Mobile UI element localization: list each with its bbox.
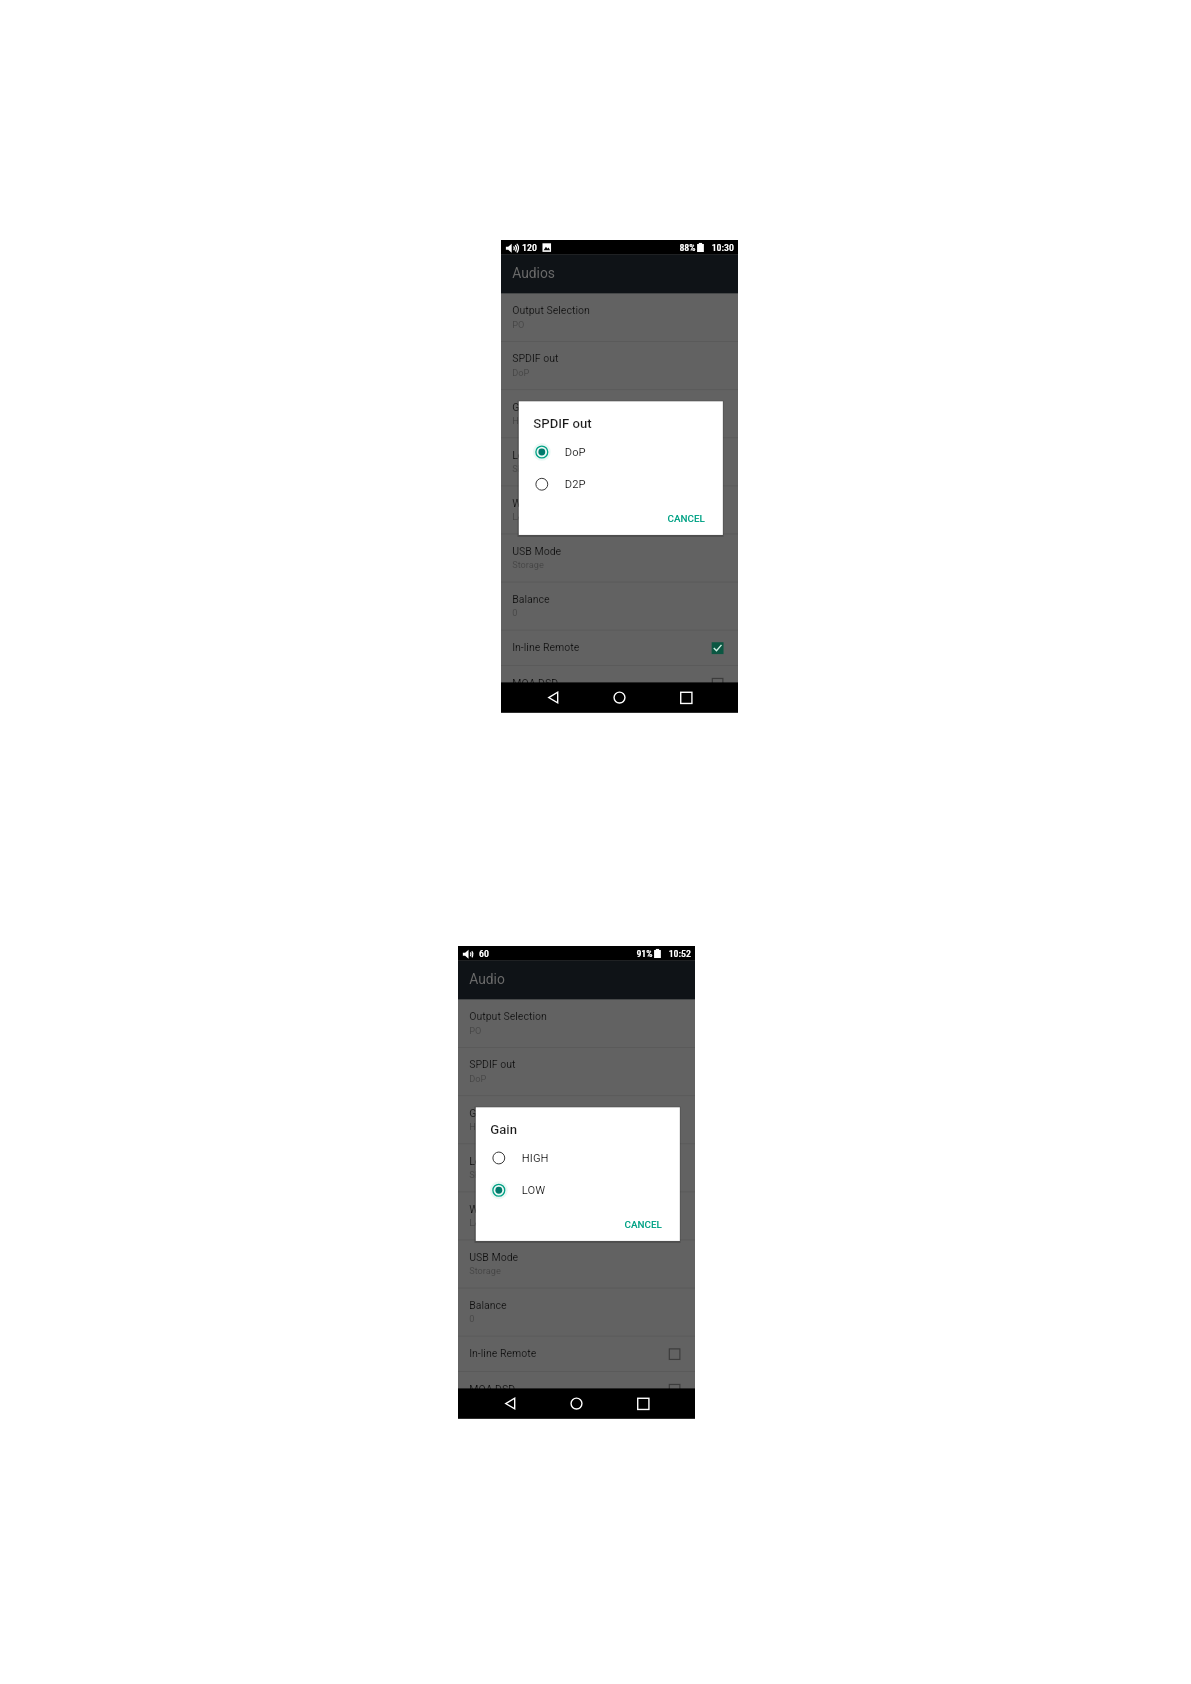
staticText: SPDIF out [533,415,592,430]
staticText: CANCEL [625,1219,662,1231]
button[interactable]: MQA DSD [501,665,738,701]
button[interactable]: Low Pass Filter [458,1143,695,1192]
staticText: MQA DSD [512,677,558,690]
staticText: DoP [565,445,586,459]
button[interactable]: Output Selection [458,999,695,1047]
button[interactable]: Wifi Mode [458,1192,695,1240]
staticText: Low Pass Filter [469,1155,541,1167]
staticText: In-line Remote [469,1348,536,1360]
staticText: PO [469,1025,482,1035]
staticText: Audios [512,266,555,282]
staticText: SPDIF out [469,1059,516,1071]
staticText: Wifi Mode [469,1203,517,1215]
staticText: Gain [512,401,534,413]
staticText: CANCEL [668,513,705,525]
staticText: SPDIF out [512,353,559,365]
button[interactable]: SPDIF out [501,341,738,389]
staticText: 10:52 [669,947,691,959]
staticText: Audio [469,972,505,988]
staticText: Output Selection [512,304,590,317]
staticText: LOW [522,1184,546,1197]
button[interactable]: DoP [519,436,723,468]
staticText: Low Pass Filter [512,449,584,461]
button[interactable]: Back [534,682,573,713]
staticText: 88% [679,241,696,253]
button[interactable]: HIGH [476,1142,680,1174]
staticText: USB Mode [469,1251,519,1263]
button[interactable]: Recent apps [623,1388,663,1419]
staticText: DoP [469,1073,487,1084]
staticText: 60 [479,947,489,959]
staticText: Gain [469,1107,491,1119]
staticText: 91% [636,947,653,959]
staticText: In-line Remote [512,642,579,654]
button[interactable]: In-line Remote [458,1336,695,1371]
staticText: Wifi Mode [512,497,560,509]
button[interactable]: In-line Remote [501,630,738,665]
staticText: PO [512,319,525,329]
staticText: 0 [469,1313,474,1324]
button[interactable]: Gain [501,389,738,437]
staticText: HIGH [512,415,535,426]
staticText: 120 [522,241,537,253]
staticText: Balance [469,1299,507,1311]
staticText: USB Mode [512,545,562,557]
button[interactable]: LOW [476,1174,680,1206]
button[interactable]: USB Mode [501,534,738,582]
button[interactable]: Back [491,1388,530,1419]
staticText: Sharp [512,463,537,474]
button[interactable]: CANCEL [619,1215,667,1236]
button[interactable]: Recent apps [666,682,706,713]
button[interactable]: D2P [519,468,723,500]
staticText: Storage [512,559,544,570]
button[interactable]: Gain [458,1095,695,1143]
button[interactable]: Wifi Mode [501,486,738,534]
staticText: DoP [512,367,530,378]
button[interactable]: MQA DSD [458,1371,695,1407]
button[interactable]: SPDIF out [458,1047,695,1095]
staticText: LAN [512,511,530,522]
staticText: Sharp [469,1169,494,1180]
staticText: LAN [469,1217,487,1228]
staticText: Gain [490,1121,517,1136]
staticText: HIGH [522,1151,549,1165]
staticText: Output Selection [469,1010,547,1023]
button[interactable]: Output Selection [501,293,738,341]
staticText: 0 [512,607,517,618]
staticText: Storage [469,1265,501,1276]
button[interactable]: USB Mode [458,1240,695,1288]
staticText: Balance [512,593,550,605]
staticText: MQA DSD [469,1383,515,1396]
button[interactable]: Balance [458,1288,695,1336]
button[interactable]: Low Pass Filter [501,437,738,486]
button[interactable]: Balance [501,582,738,630]
button[interactable]: Home [557,1388,596,1419]
staticText: 10:30 [712,241,734,253]
button[interactable]: Home [600,682,639,713]
staticText: D2P [565,478,586,491]
button[interactable]: CANCEL [662,509,710,530]
staticText: HIGH [469,1121,492,1132]
